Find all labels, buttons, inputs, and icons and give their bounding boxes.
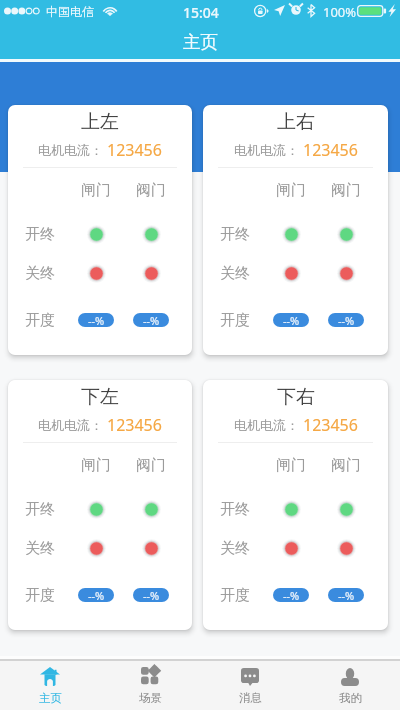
button[interactable]: 上右 — [203, 105, 388, 355]
staticText: 123456 — [303, 414, 358, 436]
staticText: 主页 — [39, 691, 62, 705]
button[interactable]: 场景 — [100, 661, 200, 710]
staticText: 阀门 — [136, 456, 166, 475]
staticText: 闸门 — [81, 181, 111, 200]
staticText: 开终 — [25, 225, 55, 244]
button[interactable]: --% — [78, 313, 114, 327]
staticText: 中国电信 — [46, 4, 94, 19]
staticText: 15:04 — [183, 3, 219, 22]
button[interactable]: --% — [328, 313, 364, 327]
staticText: 关终 — [220, 539, 250, 558]
staticText: 关终 — [25, 264, 55, 283]
staticText: 123456 — [303, 139, 358, 161]
staticText: --% — [143, 313, 160, 327]
button[interactable]: --% — [133, 313, 169, 327]
staticText: 阀门 — [331, 181, 361, 200]
staticText: 下右 — [277, 385, 315, 409]
staticText: 闸门 — [81, 456, 111, 475]
staticText: 上右 — [277, 110, 315, 134]
staticText: 开终 — [220, 500, 250, 519]
staticText: 闸门 — [276, 456, 306, 475]
staticText: 闸门 — [276, 181, 306, 200]
button[interactable]: 下左 — [8, 380, 192, 630]
button[interactable]: --% — [133, 588, 169, 602]
staticText: 123456 — [107, 139, 162, 161]
button[interactable]: 消息 — [200, 661, 300, 710]
staticText: --% — [283, 313, 300, 327]
staticText: 电机电流： — [234, 417, 299, 433]
button[interactable]: --% — [273, 313, 309, 327]
button[interactable]: --% — [273, 588, 309, 602]
staticText: 场景 — [139, 691, 162, 705]
staticText: 100% — [323, 3, 357, 21]
staticText: 关终 — [25, 539, 55, 558]
staticText: 电机电流： — [234, 142, 299, 158]
staticText: 开度 — [25, 586, 55, 605]
button[interactable]: 我的 — [300, 661, 400, 710]
staticText: 主页 — [183, 31, 218, 53]
button[interactable]: --% — [328, 588, 364, 602]
staticText: 上左 — [81, 110, 119, 134]
staticText: 阀门 — [331, 456, 361, 475]
staticText: --% — [88, 588, 105, 602]
button[interactable]: --% — [78, 588, 114, 602]
staticText: 我的 — [339, 691, 362, 705]
staticText: 电机电流： — [38, 417, 103, 433]
staticText: --% — [338, 588, 355, 602]
staticText: 开终 — [25, 500, 55, 519]
staticText: 开度 — [220, 586, 250, 605]
staticText: 开度 — [220, 311, 250, 330]
staticText: --% — [88, 313, 105, 327]
staticText: --% — [143, 588, 160, 602]
staticText: 阀门 — [136, 181, 166, 200]
staticText: 下左 — [81, 385, 119, 409]
staticText: 消息 — [239, 691, 262, 705]
staticText: --% — [338, 313, 355, 327]
staticText: 开度 — [25, 311, 55, 330]
button[interactable]: 上左 — [8, 105, 192, 355]
staticText: 开终 — [220, 225, 250, 244]
staticText: 关终 — [220, 264, 250, 283]
button[interactable]: 下右 — [203, 380, 388, 630]
staticText: 123456 — [107, 414, 162, 436]
staticText: 电机电流： — [38, 142, 103, 158]
button[interactable]: 主页 — [0, 661, 100, 710]
staticText: --% — [283, 588, 300, 602]
